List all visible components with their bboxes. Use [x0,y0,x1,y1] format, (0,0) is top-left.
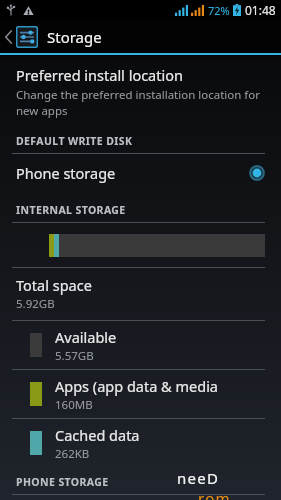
staticText: 01:48 [245,2,276,18]
button[interactable]: Phone storage [0,154,281,191]
staticText: Storage [47,27,102,47]
staticText: 160MB [55,397,93,413]
staticText: Change the preferred installation locati… [16,87,261,103]
staticText: 5.92GB [16,296,55,312]
button[interactable]: Apps (app data & media content) [0,370,281,418]
staticText: 5.57GB [55,348,94,364]
staticText: 72% [208,3,230,18]
staticText: Available [55,327,117,347]
staticText: Total space [16,275,92,295]
staticText: INTERNAL STORAGE [16,203,126,217]
staticText: PHONE STORAGE [16,475,109,489]
staticText: Apps (app data & media content) [55,376,273,396]
button[interactable]: Preferred install location [0,57,281,126]
staticText: neeD [177,468,220,488]
staticText: Cached data [55,425,140,445]
staticText: Phone storage [16,163,116,183]
staticText: new apps [16,103,68,119]
staticText: DEFAULT WRITE DISK [16,134,133,148]
button[interactable]: Available [0,321,281,369]
button[interactable]: Total space [0,268,281,320]
staticText: 262KB [55,446,90,462]
button[interactable]: Navigate up to Settings [0,20,281,53]
staticText: rom [198,488,231,500]
staticText: Preferred install location [16,65,183,85]
button[interactable]: Cached data [0,419,281,467]
